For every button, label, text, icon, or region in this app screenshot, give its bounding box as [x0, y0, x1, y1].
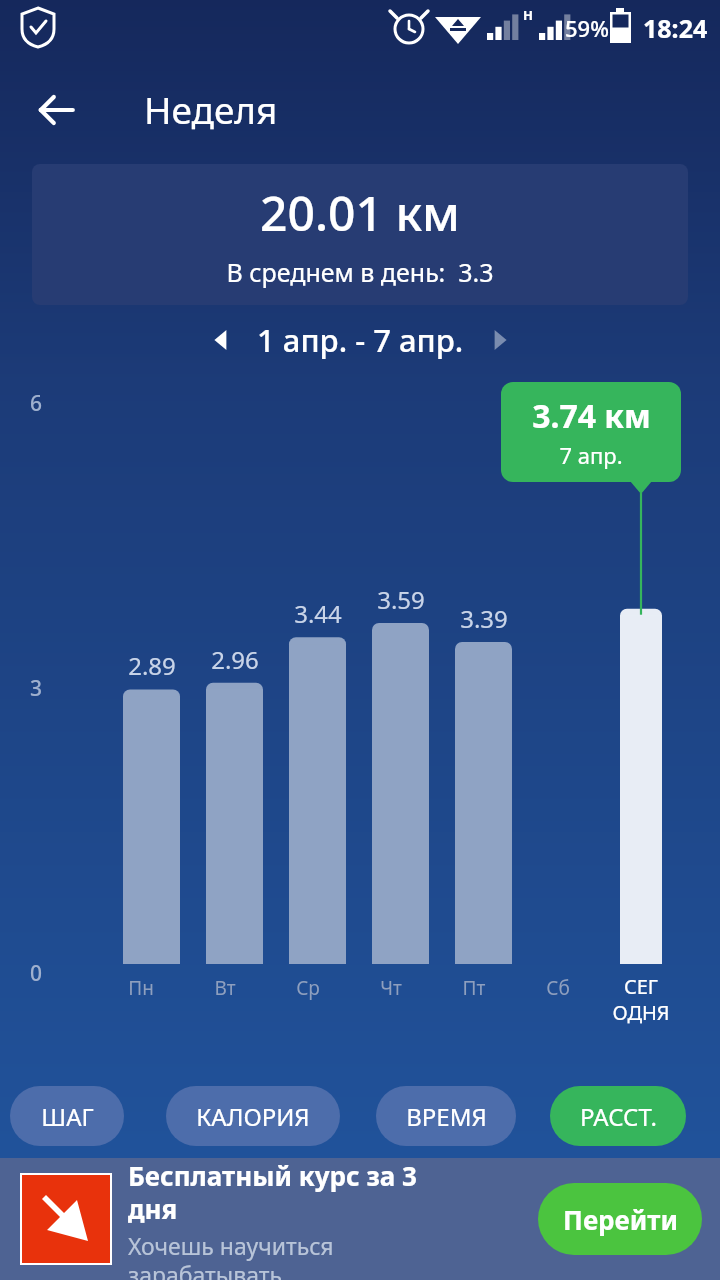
staticText: 3.39	[439, 602, 529, 635]
staticText: РАССТ.	[580, 1100, 657, 1133]
staticText: Чт	[346, 975, 436, 1001]
button[interactable]: Back	[26, 80, 86, 140]
staticText: 2.89	[107, 649, 197, 682]
button[interactable]: КАЛОРИЯ	[166, 1086, 340, 1146]
staticText: 7 апр.	[559, 440, 623, 470]
button[interactable]: Previous week	[199, 317, 245, 363]
staticText: СЕГ ОДНЯ	[596, 973, 686, 1025]
staticText: 18:24	[643, 11, 708, 45]
staticText: 3.44	[273, 597, 363, 630]
staticText: Пн	[96, 975, 186, 1001]
staticText: Бесплатный курс за 3 дня	[128, 1158, 470, 1226]
button[interactable]: ВРЕМЯ	[376, 1086, 516, 1146]
staticText: В среднем в день: 3.3	[226, 255, 494, 289]
staticText: H	[523, 6, 533, 24]
staticText: 59%	[565, 13, 609, 43]
staticText: КАЛОРИЯ	[196, 1100, 310, 1133]
button[interactable]: Next week	[476, 317, 522, 363]
staticText: Вт	[180, 975, 270, 1001]
staticText: 0	[30, 959, 43, 988]
staticText: 3.59	[356, 583, 446, 616]
staticText: Хочешь научиться зарабатывать при помощи…	[128, 1230, 470, 1280]
staticText: 6	[30, 389, 43, 418]
button[interactable]: ШАГ	[10, 1086, 124, 1146]
staticText: 2.96	[190, 643, 280, 676]
staticText: 3	[30, 674, 43, 703]
staticText: Перейти	[563, 1202, 678, 1237]
staticText: ШАГ	[41, 1100, 94, 1133]
staticText: 3.74 км	[532, 394, 651, 438]
staticText: Сб	[513, 975, 603, 1001]
button[interactable]: 1 апр. - 7 апр.	[257, 319, 464, 361]
staticText: Пт	[429, 975, 519, 1001]
staticText: 20.01 км	[260, 180, 460, 245]
button[interactable]: 20.01 км	[32, 164, 688, 305]
button[interactable]: РАССТ.	[550, 1086, 686, 1146]
button[interactable]: Перейти	[538, 1183, 702, 1255]
staticText: Ср	[263, 975, 353, 1001]
staticText: Неделя	[144, 84, 278, 134]
button[interactable]: Бесплатный курс за 3 дня	[0, 1158, 720, 1280]
staticText: ВРЕМЯ	[406, 1100, 487, 1133]
